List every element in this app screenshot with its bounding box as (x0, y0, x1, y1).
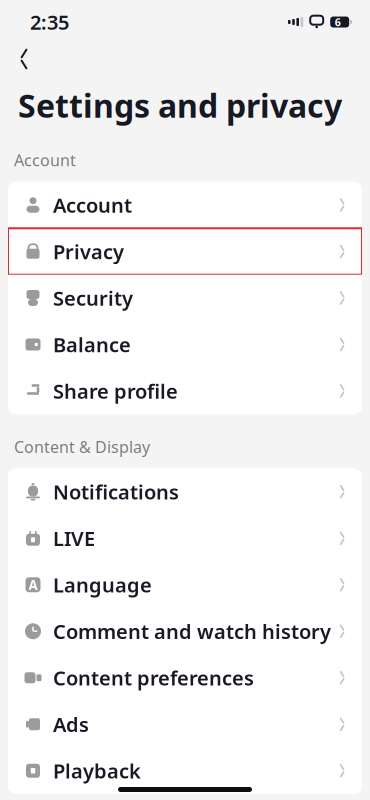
staticText: Account (14, 149, 76, 171)
staticText: Notifications (53, 478, 179, 505)
button[interactable]: Comment and watch history (8, 608, 362, 654)
staticText: Share profile (53, 378, 178, 404)
button[interactable]: Back (2, 44, 46, 74)
staticText: 6 (335, 15, 341, 29)
staticText: Language (53, 571, 152, 598)
button[interactable]: Balance (8, 321, 362, 368)
staticText: Settings and privacy (18, 84, 342, 126)
staticText: Content & Display (14, 436, 150, 457)
button[interactable]: Privacy (8, 228, 362, 275)
staticText: Ads (53, 711, 89, 738)
button[interactable]: Account (8, 182, 362, 228)
staticText: LIVE (53, 525, 95, 552)
staticText: A (28, 576, 37, 594)
button[interactable]: Share profile (8, 368, 362, 414)
button[interactable]: LIVE (8, 515, 362, 561)
staticText: Account (53, 192, 132, 218)
button[interactable]: Content preferences (8, 654, 362, 701)
staticText: Balance (53, 331, 131, 358)
staticText: Comment and watch history (53, 618, 331, 645)
staticText: Privacy (53, 238, 124, 265)
button[interactable]: Playback (8, 747, 362, 794)
button[interactable]: Security (8, 275, 362, 321)
button[interactable]: Notifications (8, 468, 362, 515)
staticText: Security (53, 285, 133, 311)
button[interactable]: A (8, 561, 362, 608)
button[interactable]: Ads (8, 701, 362, 747)
staticText: Content preferences (53, 664, 254, 691)
staticText: Playback (53, 757, 141, 784)
staticText: 2:35 (30, 9, 69, 35)
